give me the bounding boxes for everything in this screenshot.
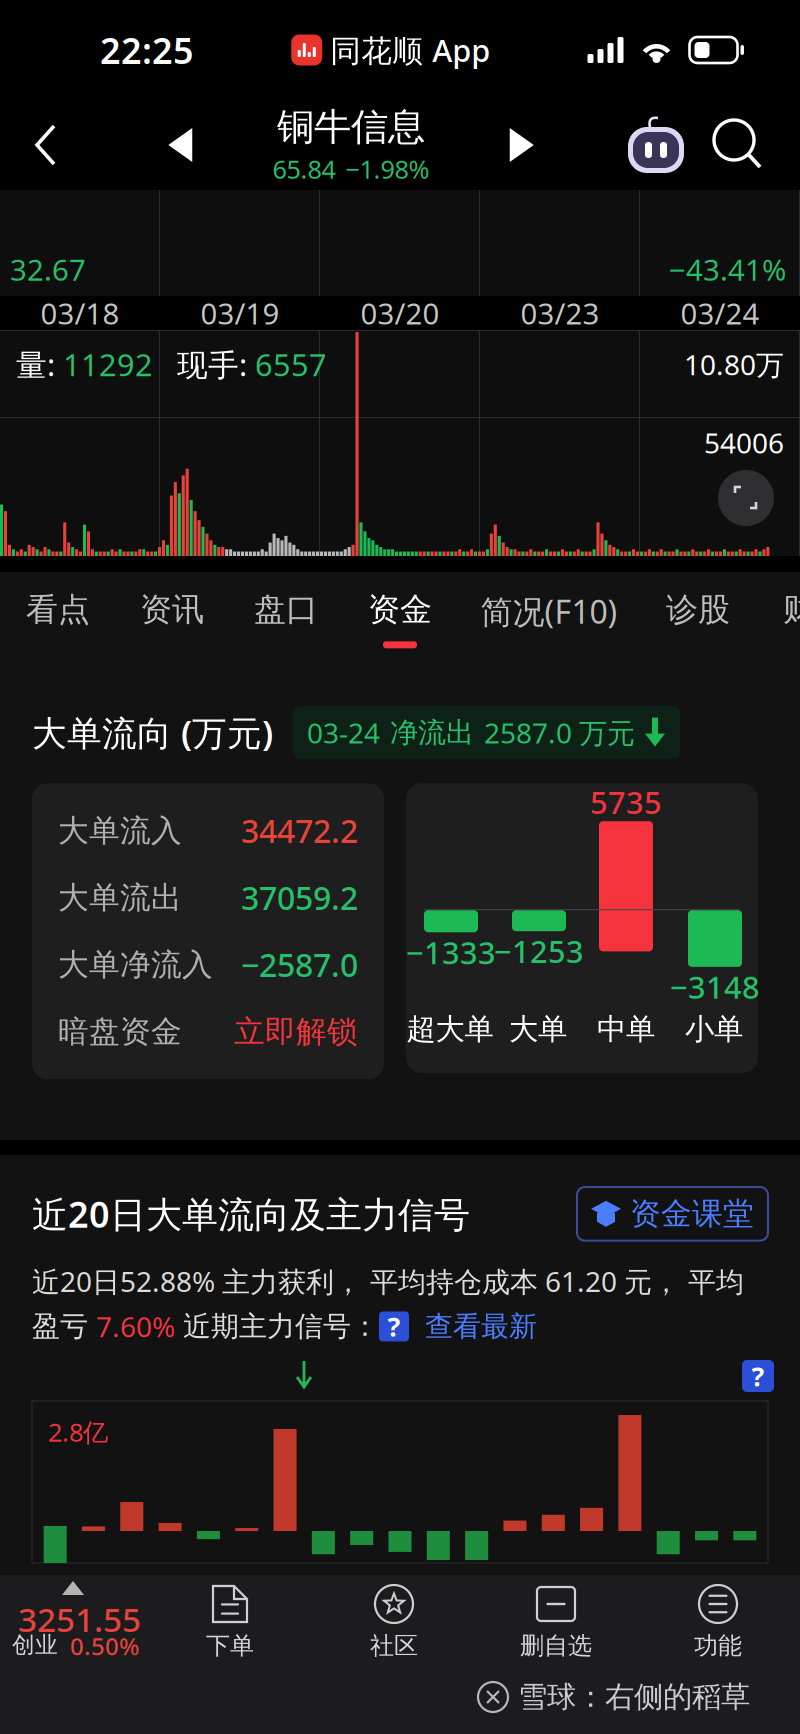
staticText: −1.98%: [345, 152, 429, 186]
staticText: 32.67: [10, 250, 86, 289]
staticText: 诊股: [666, 590, 730, 629]
button[interactable]: 智能助手: [614, 100, 698, 190]
staticText: 7.60%: [96, 1308, 175, 1345]
staticText: 6557: [255, 344, 327, 385]
staticText: 功能: [694, 1631, 742, 1660]
staticText: 近期主力信号：: [175, 1309, 379, 1344]
button[interactable]: 3251.55: [0, 1575, 160, 1660]
staticText: 近20日52.88% 主力获利， 平均持仓成本 61.20 元， 平均: [32, 1263, 744, 1300]
button[interactable]: 社区: [334, 1575, 454, 1660]
button[interactable]: 资讯: [128, 572, 216, 678]
staticText: 2.8亿: [48, 1415, 108, 1449]
staticText: −3148: [670, 966, 760, 1007]
button[interactable]: 查看最新: [409, 1309, 537, 1344]
button[interactable]: 搜索: [698, 100, 800, 190]
staticText: −43.41%: [669, 250, 786, 289]
staticText: 5735: [590, 782, 662, 822]
staticText: 资金: [368, 590, 432, 629]
staticText: 删自选: [520, 1631, 592, 1660]
button[interactable]: 简况(F10): [470, 572, 628, 678]
staticText: 中单: [597, 1011, 655, 1047]
staticText: 创业: [12, 1631, 58, 1659]
button[interactable]: 资金: [356, 572, 444, 678]
staticText: 大单净流入: [58, 946, 213, 983]
button[interactable]: 删自选: [496, 1575, 616, 1660]
staticText: 2587.0 万元: [484, 714, 635, 751]
staticText: 03/20: [360, 293, 439, 332]
staticText: 净流出: [390, 715, 474, 750]
staticText: 铜牛信息: [277, 104, 425, 150]
staticText: −1333: [406, 932, 496, 973]
staticText: 资金课堂: [630, 1195, 754, 1233]
button[interactable]: 上一只: [152, 100, 208, 190]
staticText: 超大单: [406, 1011, 493, 1047]
staticText: 03/19: [200, 293, 279, 332]
staticText: 现手:: [177, 344, 255, 385]
staticText: 近20日大单流向及主力信号: [32, 1190, 470, 1238]
staticText: 看点: [26, 590, 90, 629]
button[interactable]: 返回: [0, 100, 88, 190]
staticText: 大单: [509, 1011, 567, 1047]
staticText: −1253: [494, 931, 584, 971]
button[interactable]: 盘口: [242, 572, 330, 678]
staticText: 量:: [16, 344, 63, 385]
button[interactable]: 财: [768, 572, 800, 678]
staticText: 34472.2: [241, 809, 358, 852]
staticText: ?: [387, 1309, 400, 1344]
button[interactable]: 下一只: [494, 100, 550, 190]
staticText: 下单: [206, 1631, 254, 1660]
button[interactable]: 暗盘资金: [32, 998, 384, 1065]
staticText: 10.80万: [684, 346, 784, 383]
staticText: ?: [751, 1358, 764, 1394]
staticText: 65.84: [272, 152, 335, 186]
staticText: 小单: [685, 1011, 743, 1047]
staticText: 37059.2: [241, 876, 358, 919]
staticText: 大单流入: [58, 812, 182, 849]
staticText: 03/23: [520, 293, 599, 332]
staticText: 大单流向 (万元): [32, 710, 273, 756]
staticText: 资讯: [140, 590, 204, 629]
staticText: 11292: [63, 344, 153, 385]
staticText: 同花顺 App: [330, 30, 490, 70]
staticText: 03-24: [307, 714, 380, 751]
staticText: 3251.55: [18, 1597, 141, 1641]
staticText: 盘口: [254, 590, 318, 629]
staticText: 22:25: [100, 26, 194, 74]
staticText: 大单流出: [58, 879, 182, 916]
staticText: 财: [783, 590, 800, 629]
staticText: −2587.0: [241, 943, 358, 986]
button[interactable]: 下单: [170, 1575, 290, 1660]
staticText: 查看最新: [409, 1309, 537, 1344]
staticText: 0.50%: [70, 1630, 139, 1662]
staticText: 54006: [704, 424, 784, 461]
staticText: 03/18: [40, 293, 119, 332]
button[interactable]: 看点: [14, 572, 102, 678]
staticText: 雪球：右侧的稻草: [518, 1679, 750, 1715]
button[interactable]: 功能: [658, 1575, 778, 1660]
button[interactable]: 资金课堂: [577, 1187, 768, 1241]
staticText: 盈亏: [32, 1309, 96, 1344]
staticText: 暗盘资金: [58, 1013, 182, 1050]
staticText: 社区: [370, 1631, 418, 1660]
staticText: 简况(F10): [480, 590, 617, 632]
staticText: 03/24: [680, 293, 759, 332]
staticText: 立即解锁: [234, 1013, 358, 1050]
button[interactable]: 诊股: [654, 572, 742, 678]
